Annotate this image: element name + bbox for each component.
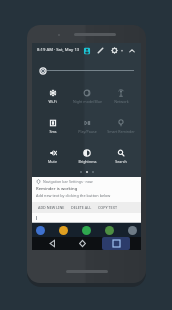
button[interactable]: Search (104, 144, 138, 168)
staticText: DELETE ALL (71, 205, 92, 210)
staticText: Brightness (78, 159, 97, 164)
button[interactable]: App (128, 226, 137, 235)
button[interactable]: Brightness (70, 144, 104, 168)
button[interactable]: Recents (102, 237, 130, 250)
staticText: Play/Pause (78, 129, 97, 134)
button[interactable]: DELETE ALL (69, 202, 94, 213)
button[interactable]: Smart Reminder (104, 114, 138, 138)
button[interactable]: Navigation bar Settings · now (32, 177, 141, 223)
staticText: Add new text by clicking the button belo… (36, 193, 111, 198)
button[interactable]: Wi-Fi (35, 84, 70, 108)
button[interactable]: App (82, 226, 91, 235)
staticText: Night mode/Blue (73, 99, 102, 104)
staticText: 8:19 AM · Sat, May 13 (37, 47, 80, 53)
staticText: ▾ (121, 48, 124, 53)
button[interactable]: Text input (32, 213, 141, 222)
button[interactable]: App (105, 226, 114, 235)
button[interactable]: Home (73, 237, 91, 250)
button[interactable]: COPY TEXT (96, 202, 119, 213)
button[interactable]: Mute (35, 144, 70, 168)
button[interactable]: Edit (95, 45, 106, 56)
button[interactable]: App (59, 226, 68, 235)
button[interactable]: Brightness slider (38, 64, 134, 76)
button[interactable]: Night mode/Blue (70, 84, 104, 108)
staticText: COPY TEXT (98, 205, 117, 210)
button[interactable]: Back (43, 237, 61, 250)
staticText: Wi-Fi (48, 99, 57, 104)
staticText: Search (115, 159, 127, 164)
button[interactable]: Settings (109, 45, 120, 56)
staticText: Navigation bar Settings · now (43, 179, 93, 184)
staticText: Sms (49, 129, 57, 134)
button[interactable]: Play/Pause (70, 114, 104, 138)
button[interactable]: Sms (35, 114, 70, 138)
button[interactable]: User (81, 45, 92, 56)
button[interactable]: App (36, 226, 45, 235)
staticText: Mute (48, 159, 57, 164)
staticText: Network (114, 99, 129, 104)
button[interactable]: Collapse (126, 45, 137, 56)
staticText: Reminder is working (36, 186, 78, 192)
staticText: Smart Reminder (107, 129, 135, 134)
button[interactable]: ADD NEW LINE (36, 202, 67, 213)
button[interactable]: Network (104, 84, 138, 108)
staticText: ADD NEW LINE (38, 205, 65, 210)
